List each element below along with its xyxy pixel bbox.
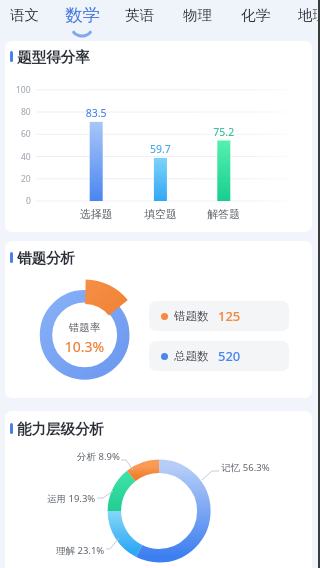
staticText: 化学 xyxy=(241,6,270,24)
button[interactable]: 英语 xyxy=(110,0,168,30)
staticText: 错题数 xyxy=(174,309,209,323)
button[interactable]: 地理 xyxy=(283,0,320,30)
staticText: 520 xyxy=(218,347,241,365)
button[interactable]: 物理 xyxy=(168,0,226,30)
button[interactable]: 总题数 xyxy=(149,341,289,371)
staticText: 题型得分率 xyxy=(17,48,90,66)
button[interactable]: 错题数 xyxy=(149,301,289,331)
button[interactable]: 语文 xyxy=(0,0,53,30)
button[interactable]: 数学 xyxy=(53,0,111,30)
staticText: 总题数 xyxy=(174,349,209,363)
staticText: 物理 xyxy=(183,6,212,24)
staticText: 地理 xyxy=(298,6,320,24)
staticText: 能力层级分析 xyxy=(17,420,104,438)
button[interactable]: 化学 xyxy=(226,0,284,30)
staticText: 错题分析 xyxy=(17,249,75,267)
staticText: 125 xyxy=(218,307,241,325)
staticText: 语文 xyxy=(10,6,39,24)
staticText: 英语 xyxy=(125,6,154,24)
staticText: 数学 xyxy=(65,4,100,26)
